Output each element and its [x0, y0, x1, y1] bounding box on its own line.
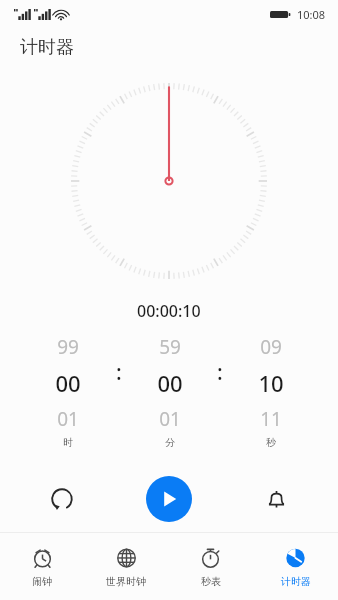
- staticText: 世界时钟: [106, 575, 146, 588]
- staticText: 闹钟: [32, 575, 52, 588]
- button[interactable]: Start: [146, 476, 192, 522]
- button[interactable]: Ringtone: [258, 481, 294, 517]
- button[interactable]: 计时器: [253, 533, 338, 600]
- staticText: 00: [157, 368, 183, 398]
- staticText: 99: [57, 334, 79, 360]
- button[interactable]: 闹钟: [0, 533, 84, 600]
- button[interactable]: 秒表: [168, 533, 253, 600]
- staticText: 01: [159, 406, 181, 432]
- button[interactable]: 09: [229, 334, 312, 449]
- staticText: 11: [260, 406, 282, 432]
- button[interactable]: 59: [128, 334, 211, 449]
- staticText: 01: [57, 406, 79, 432]
- staticText: 时: [63, 436, 73, 449]
- staticText: 秒表: [201, 575, 221, 588]
- staticText: 计时器: [281, 575, 311, 588]
- button[interactable]: Reset: [44, 481, 80, 517]
- staticText: :: [217, 358, 223, 387]
- staticText: 09: [260, 334, 282, 360]
- staticText: 00:00:10: [137, 300, 201, 322]
- staticText: 59: [159, 334, 181, 360]
- staticText: 分: [165, 436, 175, 449]
- staticText: :: [116, 358, 122, 387]
- staticText: 秒: [266, 436, 276, 449]
- button[interactable]: 99: [26, 334, 110, 449]
- staticText: 计时器: [20, 36, 74, 59]
- staticText: 10: [258, 368, 284, 398]
- button[interactable]: 世界时钟: [84, 533, 168, 600]
- staticText: 00: [55, 368, 81, 398]
- staticText: 10:08: [297, 7, 326, 22]
